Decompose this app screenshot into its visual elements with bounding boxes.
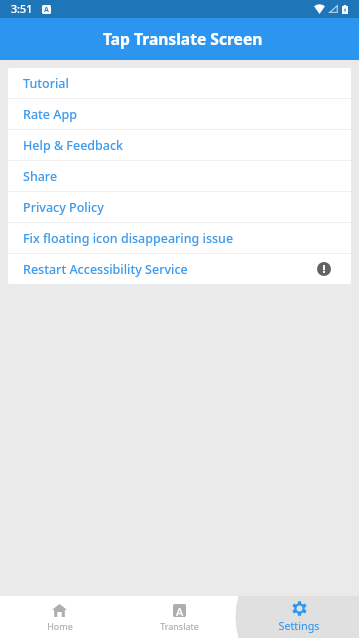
other: More information [317,262,331,276]
button[interactable]: Restart Accessibility Service [8,254,351,284]
staticText: Home [47,620,73,632]
button[interactable]: Fix floating icon disappearing issue [8,223,351,253]
staticText: Privacy Policy [23,199,104,216]
button[interactable]: Privacy Policy [8,192,351,222]
button[interactable]: Home [0,596,119,638]
staticText: Fix floating icon disappearing issue [23,230,234,247]
button[interactable]: Help & Feedback [8,130,351,160]
staticText: Translate [160,620,199,632]
staticText: A [176,604,184,617]
staticText: 3:51 [11,2,33,17]
button[interactable]: Tutorial [8,68,351,98]
staticText: Tap Translate Screen [103,28,263,49]
staticText: Help & Feedback [23,137,124,154]
staticText: A [44,5,49,14]
staticText: Settings [278,618,320,633]
staticText: Tutorial [23,75,69,92]
staticText: Restart Accessibility Service [23,261,188,278]
button[interactable]: Rate App [8,99,351,129]
staticText: Rate App [23,106,77,123]
button[interactable]: Settings [239,596,359,638]
staticText: Share [23,168,58,185]
button[interactable]: A [119,596,239,638]
button[interactable]: Share [8,161,351,191]
